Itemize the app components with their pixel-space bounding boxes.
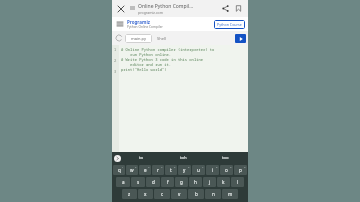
staticText: x <box>144 191 147 197</box>
staticText: i <box>212 167 214 173</box>
staticText: j <box>209 179 211 185</box>
button[interactable]: main.py <box>125 34 152 43</box>
button[interactable]: too <box>204 152 246 164</box>
staticText: to <box>139 155 144 161</box>
staticText: 4 <box>161 165 163 168</box>
staticText: too <box>222 155 229 161</box>
button[interactable]: o <box>220 165 233 175</box>
staticText: main.py <box>131 36 146 41</box>
staticText: run Python online. <box>121 52 172 57</box>
button[interactable]: n <box>205 189 221 199</box>
staticText: q <box>118 167 121 173</box>
staticText: editor and run it. <box>121 62 172 67</box>
button[interactable]: toh <box>162 152 204 164</box>
staticText: 3 <box>114 69 117 74</box>
staticText: v <box>178 191 181 197</box>
button[interactable]: s <box>131 177 145 187</box>
staticText: k <box>222 179 225 185</box>
staticText: o <box>225 167 228 173</box>
staticText: y <box>183 167 186 173</box>
staticText: programiz.com <box>138 10 163 15</box>
staticText: t <box>170 167 172 173</box>
staticText: e <box>144 167 147 173</box>
button[interactable]: b <box>188 189 204 199</box>
button[interactable]: i <box>206 165 219 175</box>
button[interactable]: to <box>121 152 162 164</box>
button[interactable]: e <box>139 165 151 175</box>
button[interactable]: k <box>217 177 230 187</box>
staticText: u <box>197 167 200 173</box>
staticText: Online Python Compil... <box>138 3 194 10</box>
button[interactable]: Python Course <box>214 20 245 29</box>
staticText: l <box>237 179 239 185</box>
button[interactable]: h <box>189 177 202 187</box>
staticText: 1 <box>114 47 117 52</box>
staticText: toh <box>180 155 187 161</box>
staticText: 0 <box>244 165 246 168</box>
button[interactable]: Menu <box>115 19 125 29</box>
button[interactable]: Bookmark <box>232 2 245 15</box>
staticText: s <box>137 179 140 185</box>
button[interactable]: Shell <box>152 34 171 43</box>
button[interactable]: g <box>175 177 188 187</box>
staticText: 2 <box>135 165 137 168</box>
button[interactable]: Share <box>219 2 232 15</box>
button[interactable]: l <box>231 177 244 187</box>
button[interactable]: z <box>122 189 137 199</box>
button[interactable]: y <box>178 165 191 175</box>
button[interactable]: j <box>203 177 216 187</box>
button[interactable]: r <box>152 165 164 175</box>
button[interactable]: x <box>138 189 153 199</box>
staticText: b <box>195 191 198 197</box>
button[interactable]: Run <box>235 34 246 43</box>
button[interactable]: a <box>116 177 130 187</box>
staticText: 2 <box>114 58 117 63</box>
staticText: # Write Python 3 code in this online <box>121 57 204 62</box>
button[interactable]: u <box>192 165 205 175</box>
button[interactable]: f <box>161 177 174 187</box>
button[interactable]: d <box>146 177 160 187</box>
staticText: print("Hello world") <box>121 67 167 72</box>
button[interactable]: w <box>126 165 138 175</box>
staticText: # Online Python compiler (interpreter) t… <box>121 47 215 52</box>
staticText: m <box>228 191 233 197</box>
button[interactable]: m <box>222 189 238 199</box>
staticText: p <box>239 167 242 173</box>
staticText: 7 <box>202 165 204 168</box>
staticText: a <box>122 179 125 185</box>
button[interactable]: Close <box>115 3 127 15</box>
button[interactable]: Reset <box>114 33 124 43</box>
staticText: n <box>212 191 215 197</box>
staticText: Shell <box>157 36 166 41</box>
staticText: f <box>167 179 169 185</box>
staticText: d <box>152 179 155 185</box>
staticText: z <box>128 191 131 197</box>
staticText: c <box>161 191 164 197</box>
button[interactable]: Expand suggestions <box>114 155 121 162</box>
staticText: 6 <box>188 165 190 168</box>
staticText: 8 <box>216 165 218 168</box>
staticText: Python Online Compiler <box>127 25 163 29</box>
staticText: 3 <box>148 165 150 168</box>
staticText: g <box>180 179 183 185</box>
button[interactable]: v <box>171 189 187 199</box>
staticText: 5 <box>174 165 176 168</box>
staticText: 1 <box>122 165 124 168</box>
button[interactable]: t <box>165 165 177 175</box>
button[interactable]: c <box>154 189 170 199</box>
staticText: r <box>157 167 159 173</box>
button[interactable]: p <box>234 165 247 175</box>
staticText: Programiz <box>127 19 150 25</box>
staticText: h <box>194 179 197 185</box>
staticText: Python Course <box>217 22 242 27</box>
staticText: w <box>130 167 134 173</box>
staticText: 9 <box>230 165 232 168</box>
button[interactable]: q <box>113 165 125 175</box>
